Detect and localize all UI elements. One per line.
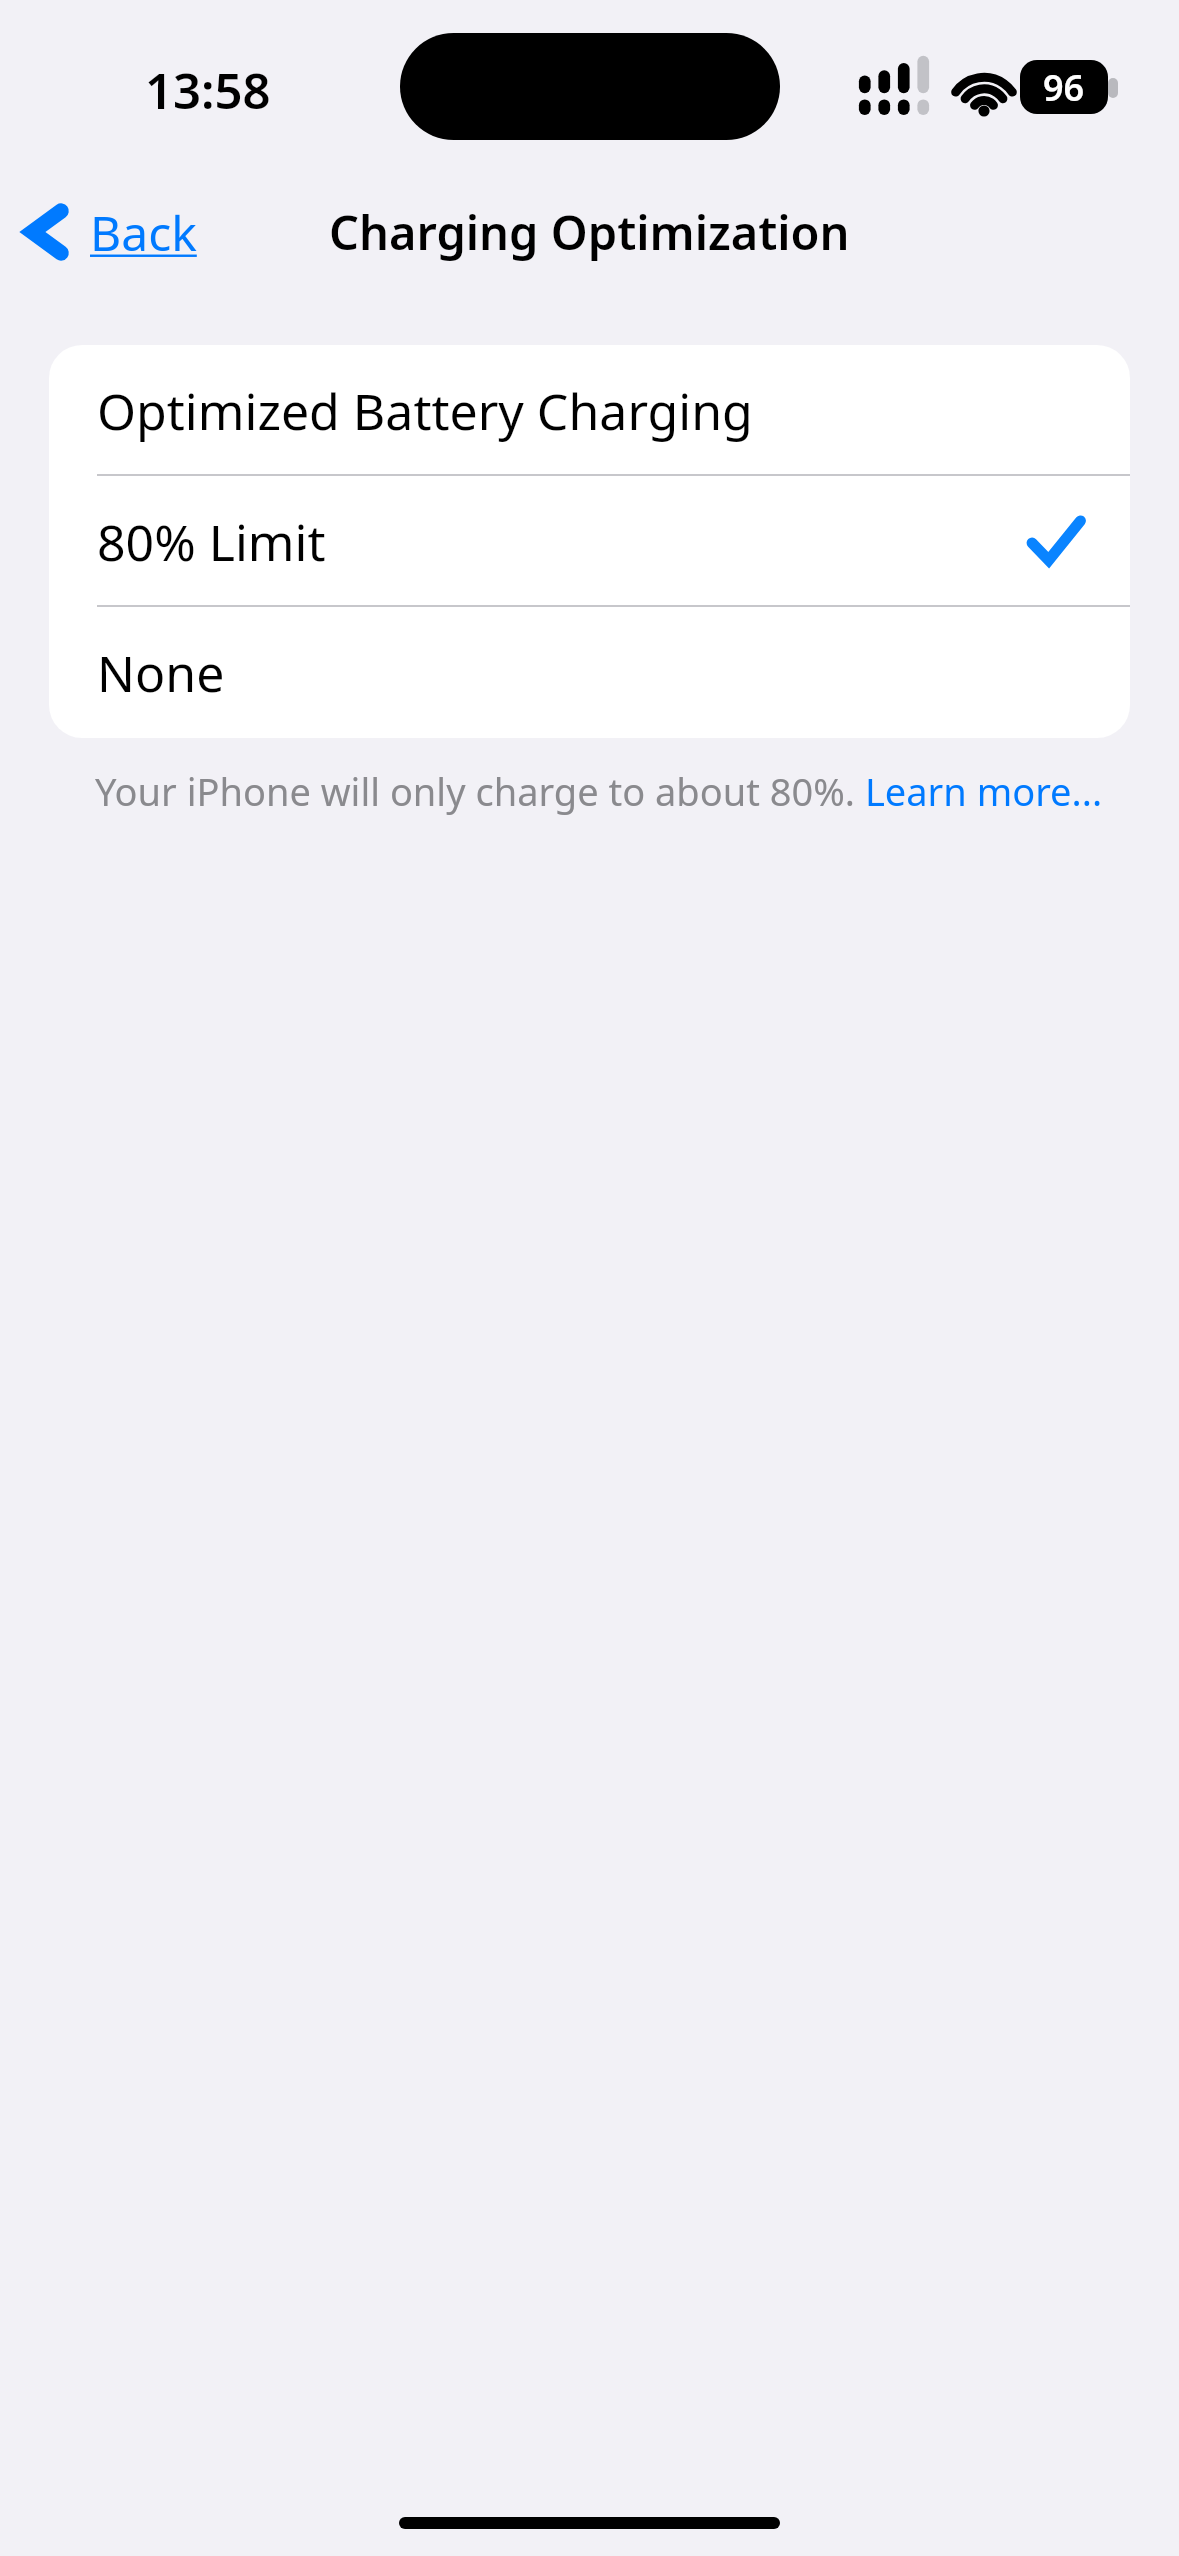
button[interactable]: 80% Limit bbox=[49, 476, 1130, 607]
staticText: Charging Optimization bbox=[329, 200, 850, 264]
other: Back bbox=[28, 202, 64, 262]
button[interactable]: Optimized Battery Charging bbox=[49, 345, 1130, 476]
button[interactable]: Your iPhone will only charge to about 80… bbox=[95, 765, 1103, 817]
button[interactable]: None bbox=[49, 607, 1130, 738]
staticText: 13:58 bbox=[145, 57, 271, 117]
button[interactable]: Back bbox=[20, 186, 205, 278]
staticText: 96 bbox=[1043, 63, 1085, 112]
staticText: Back bbox=[90, 200, 197, 265]
staticText: None bbox=[97, 639, 225, 707]
staticText: 80% Limit bbox=[97, 508, 326, 576]
staticText: Optimized Battery Charging bbox=[97, 377, 753, 445]
